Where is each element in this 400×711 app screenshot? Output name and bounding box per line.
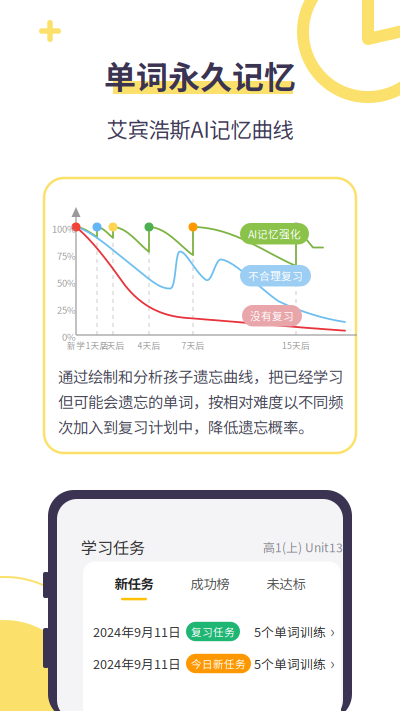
staticText: 不合理复习 — [248, 268, 303, 283]
staticText: 艾宾浩斯AI记忆曲线 — [106, 113, 293, 144]
staticText: 5个单词训练 — [254, 622, 326, 641]
button[interactable]: 新任务 — [96, 573, 172, 600]
staticText: 复习任务 — [191, 624, 235, 639]
staticText: 未达标 — [266, 573, 305, 593]
staticText: 4天后 — [137, 339, 160, 351]
staticText: › — [330, 651, 335, 674]
staticText: 通过绘制和分析孩子遗忘曲线，把已经学习 — [58, 365, 343, 387]
staticText: 高1(上) Unit13 — [263, 538, 343, 556]
staticText: 2天后 — [101, 339, 124, 351]
staticText: 1天后 — [85, 339, 108, 351]
staticText: 但可能会遗忘的单词，按相对难度以不同频 — [58, 390, 343, 412]
staticText: AI记忆强化 — [248, 226, 301, 241]
staticText: 新学 — [67, 339, 85, 351]
staticText: 5个单词训练 — [254, 654, 326, 673]
staticText: 今日新任务 — [191, 656, 246, 671]
button[interactable]: 2024年9月11日 — [93, 647, 331, 679]
staticText: 7天后 — [181, 339, 204, 351]
staticText: 成功榜 — [190, 573, 229, 593]
staticText: 单词永久记忆 — [104, 52, 296, 98]
staticText: 50% — [57, 276, 76, 289]
staticText: 0% — [62, 330, 76, 343]
staticText: 100% — [52, 222, 76, 235]
staticText: 新任务 — [114, 573, 153, 593]
staticText: 没有复习 — [250, 308, 294, 323]
staticText: 次加入到复习计划中，降低遗忘概率。 — [58, 415, 313, 438]
button[interactable]: 2024年9月11日 — [93, 615, 331, 647]
staticText: 2024年9月11日 — [93, 654, 181, 673]
staticText: 2024年9月11日 — [93, 622, 181, 641]
staticText: 学习任务 — [81, 535, 145, 559]
staticText: 15天后 — [282, 339, 310, 351]
staticText: 25% — [57, 303, 76, 316]
staticText: › — [330, 619, 335, 642]
staticText: 75% — [57, 249, 76, 262]
button[interactable]: 成功榜 — [172, 573, 248, 600]
button[interactable]: 未达标 — [248, 573, 324, 600]
